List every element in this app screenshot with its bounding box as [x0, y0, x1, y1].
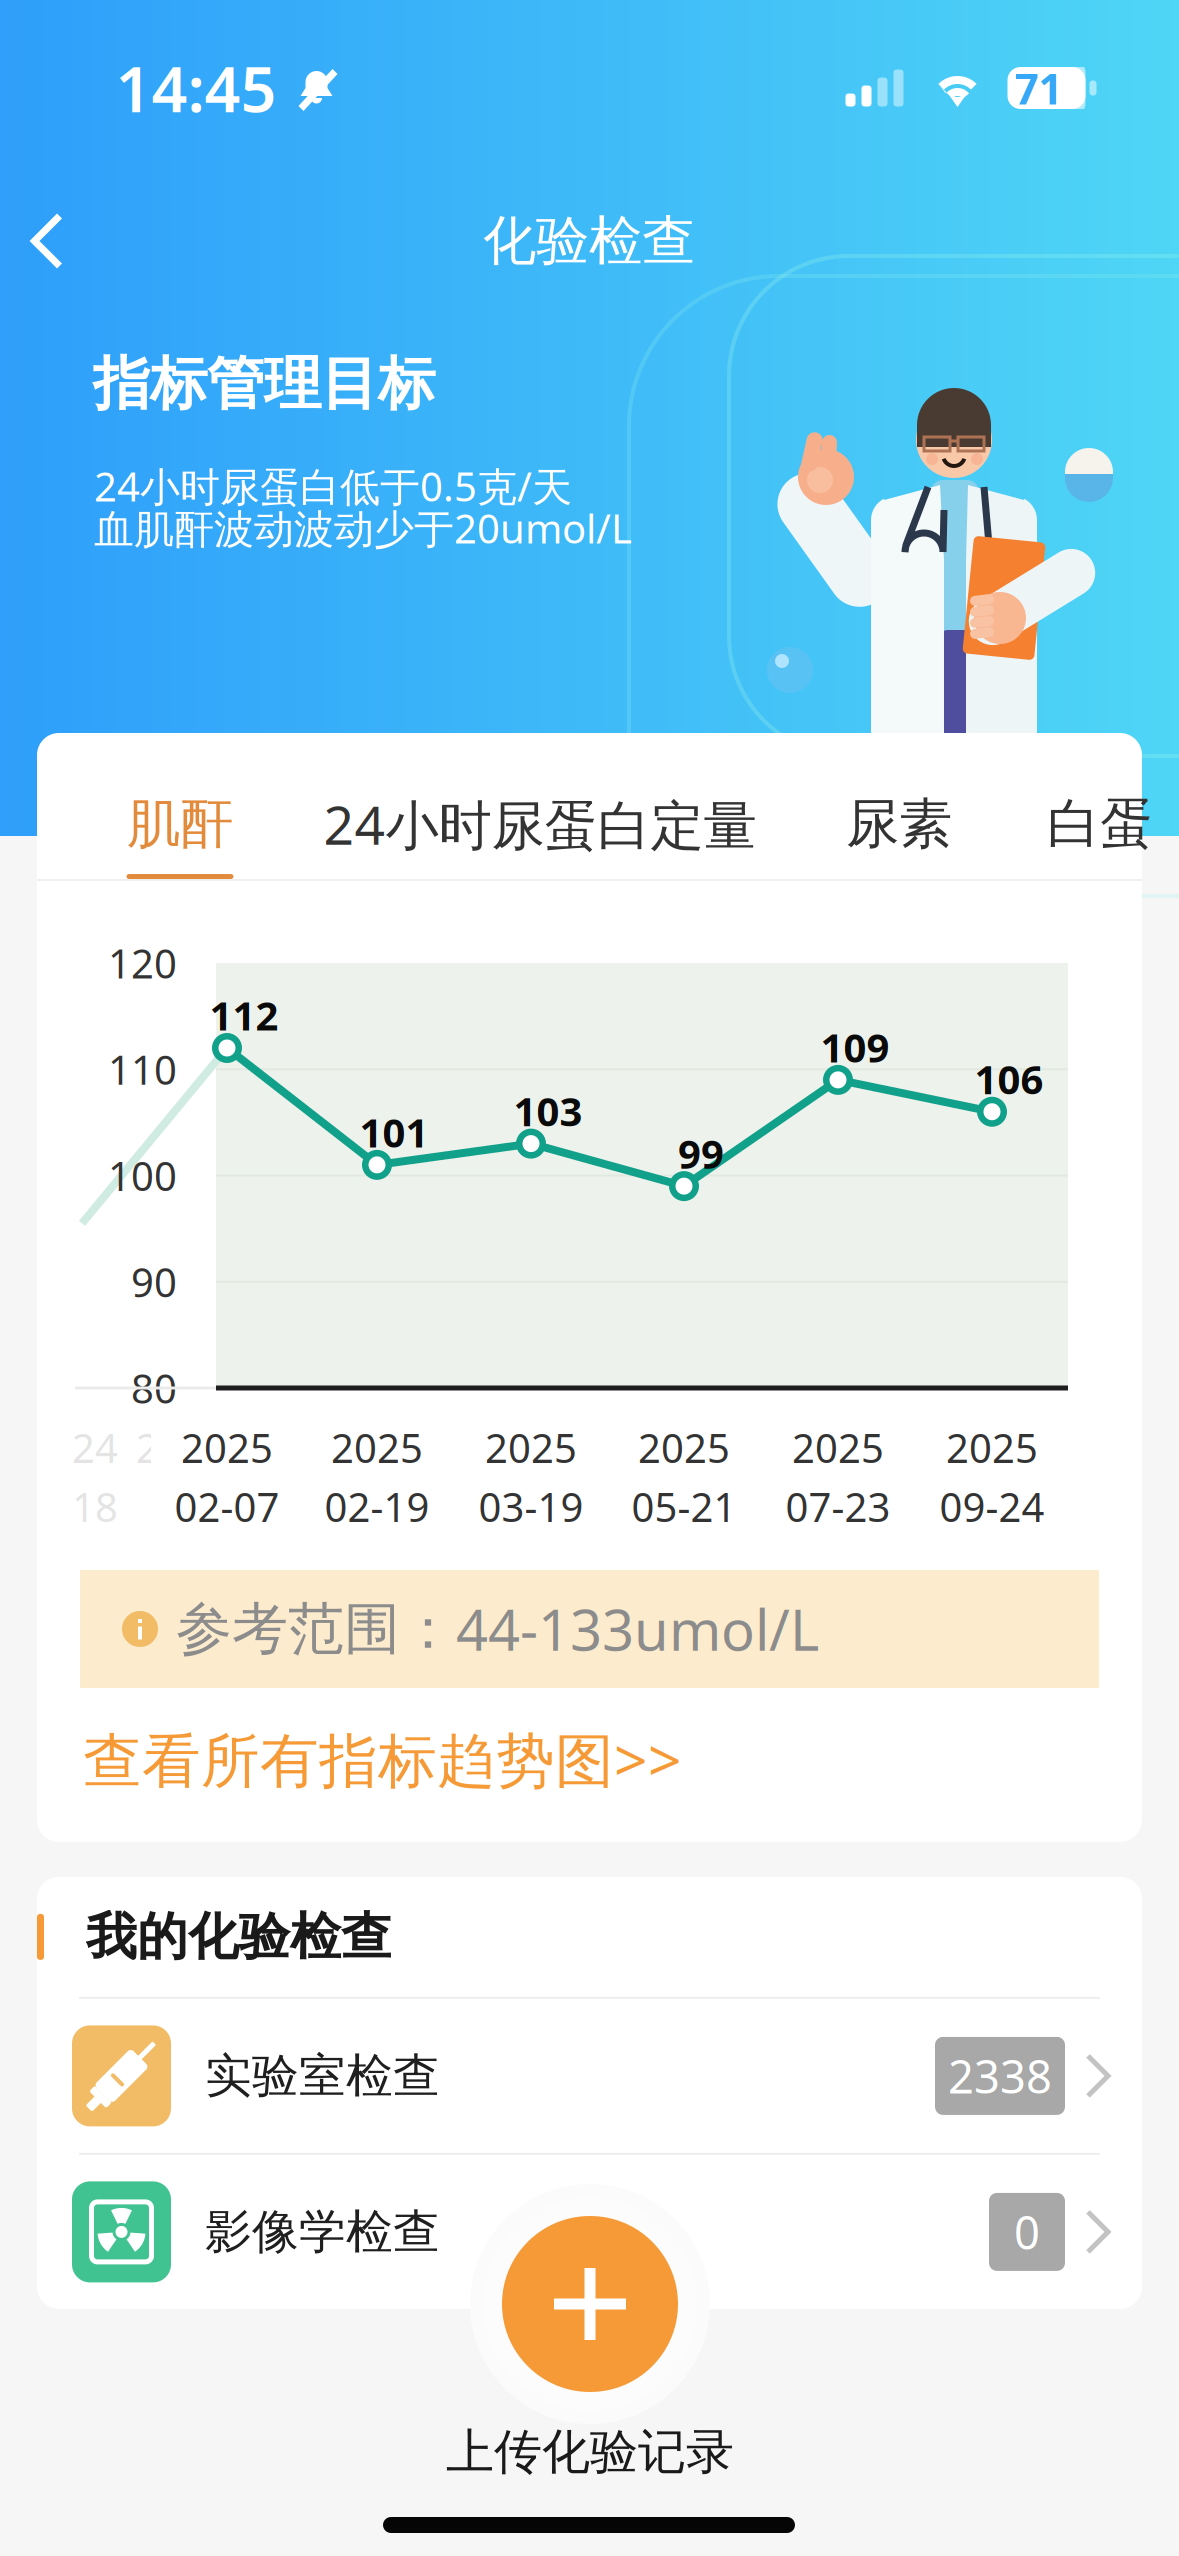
staticText: 影像学检查	[205, 2203, 440, 2260]
staticText: 24小时尿蛋白定量	[323, 789, 756, 859]
staticText: 查看所有指标趋势图>>	[83, 1720, 682, 1798]
staticText: 24小时尿蛋白低于0.5克/天	[94, 459, 572, 512]
staticText: 18	[72, 1480, 118, 1533]
staticText: 109	[820, 1020, 889, 1073]
staticText: 103	[513, 1084, 582, 1137]
button[interactable]: 上传化验记录	[416, 2408, 764, 2495]
staticText: 106	[974, 1052, 1043, 1105]
staticText: 44-133umol/L	[456, 1592, 819, 1666]
button[interactable]: 24小时尿蛋白定量	[315, 733, 765, 879]
staticText: 血肌酐波动波动少于20umol/L	[94, 501, 632, 554]
staticText: 99	[678, 1127, 724, 1180]
button[interactable]: 影像学检查	[37, 2155, 1142, 2309]
staticText: 0	[1014, 2202, 1040, 2262]
button[interactable]: 尿素	[809, 733, 989, 879]
staticText: 02-07	[174, 1480, 279, 1533]
staticText: 09-24	[939, 1480, 1044, 1533]
staticText: 71	[1014, 60, 1062, 116]
staticText: 02-	[152, 1480, 211, 1533]
staticText: 80	[131, 1361, 177, 1414]
staticText: 2025	[638, 1421, 730, 1474]
staticText: 24	[72, 1421, 118, 1474]
staticText: 尿素	[846, 791, 952, 857]
staticText: 我的化验检查	[86, 1906, 392, 1968]
staticText: 02-19	[324, 1480, 429, 1533]
staticText: 2338	[948, 2046, 1052, 2106]
staticText: 90	[131, 1255, 177, 1308]
staticText: 化验检查	[483, 208, 695, 274]
staticText: 肌酐	[127, 791, 233, 857]
button[interactable]: Back	[9, 196, 85, 286]
button[interactable]: 肌酐	[90, 733, 270, 879]
button[interactable]: 白蛋	[1010, 733, 1179, 879]
staticText: 指标管理目标	[93, 349, 435, 419]
staticText: 14:45	[115, 46, 276, 130]
staticText: 2025	[136, 1421, 228, 1474]
staticText: 110	[108, 1043, 177, 1096]
button[interactable]: 查看所有指标趋势图>>	[83, 1698, 682, 1820]
staticText: 2025	[946, 1421, 1038, 1474]
staticText: 07-23	[785, 1480, 890, 1533]
staticText: 2025	[485, 1421, 577, 1474]
staticText: 白蛋	[1047, 791, 1153, 857]
button[interactable]: 实验室检查	[37, 1999, 1142, 2153]
staticText: 2025	[792, 1421, 884, 1474]
staticText: 112	[209, 988, 278, 1041]
button[interactable]	[470, 2184, 710, 2424]
staticText: 上传化验记录	[446, 2422, 734, 2481]
staticText: 101	[359, 1105, 428, 1158]
staticText: 05-21	[631, 1480, 736, 1533]
staticText: 实验室检查	[205, 2047, 440, 2104]
staticText: 03-19	[478, 1480, 583, 1533]
staticText: 120	[108, 936, 177, 989]
staticText: 参考范围：	[176, 1595, 456, 1663]
staticText: 100	[108, 1149, 177, 1202]
staticText: 2025	[331, 1421, 423, 1474]
staticText: 2025	[181, 1421, 273, 1474]
